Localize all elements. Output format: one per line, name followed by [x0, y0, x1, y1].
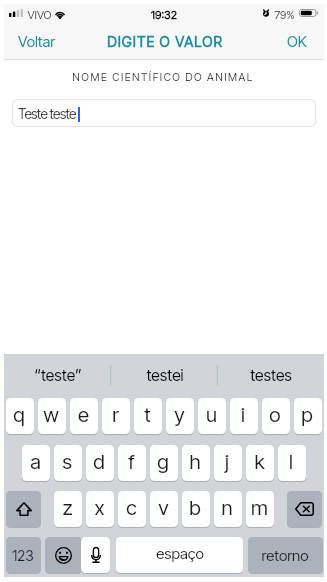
button[interactable]: Dictate: [81, 537, 110, 573]
button[interactable]: retorno: [248, 537, 323, 573]
button[interactable]: “teste”: [4, 354, 111, 396]
button[interactable]: e: [70, 398, 98, 434]
staticText: g: [157, 449, 169, 474]
button[interactable]: a: [22, 445, 50, 481]
staticText: j: [225, 449, 229, 474]
staticText: h: [189, 449, 201, 474]
button[interactable]: Emoji: [45, 537, 82, 573]
staticText: s: [62, 449, 72, 474]
staticText: t: [144, 402, 151, 427]
staticText: b: [189, 495, 201, 520]
button[interactable]: espaço: [116, 537, 243, 573]
staticText: Teste teste: [18, 106, 76, 123]
staticText: d: [93, 449, 105, 474]
staticText: u: [206, 402, 217, 427]
staticText: x: [94, 495, 105, 520]
staticText: f: [128, 449, 135, 474]
staticText: y: [174, 402, 185, 427]
button[interactable]: Teste teste: [12, 99, 316, 127]
staticText: a: [30, 449, 41, 474]
button[interactable]: z: [54, 491, 82, 527]
button[interactable]: i: [230, 398, 258, 434]
button[interactable]: v: [150, 491, 178, 527]
staticText: 79%: [273, 8, 296, 21]
button[interactable]: l: [278, 445, 306, 481]
staticText: n: [221, 495, 233, 520]
button[interactable]: m: [246, 491, 274, 527]
button[interactable]: Backspace: [287, 491, 322, 527]
staticText: o: [269, 402, 281, 427]
staticText: w: [43, 402, 59, 427]
staticText: NOME CIENTÍFICO DO ANIMAL: [3, 71, 323, 84]
button[interactable]: h: [182, 445, 210, 481]
button[interactable]: b: [182, 491, 210, 527]
staticText: q: [13, 402, 25, 427]
button[interactable]: n: [214, 491, 242, 527]
button[interactable]: u: [198, 398, 226, 434]
staticText: Voltar: [18, 32, 56, 50]
button[interactable]: testei: [111, 354, 218, 396]
button[interactable]: p: [294, 398, 322, 434]
staticText: 19:32: [146, 8, 182, 22]
button[interactable]: Shift: [6, 491, 41, 527]
button[interactable]: x: [86, 491, 114, 527]
button[interactable]: j: [214, 445, 242, 481]
button[interactable]: c: [118, 491, 146, 527]
button[interactable]: k: [246, 445, 274, 481]
staticText: i: [241, 402, 245, 427]
button[interactable]: t: [134, 398, 162, 434]
button[interactable]: f: [118, 445, 146, 481]
button[interactable]: g: [150, 445, 178, 481]
staticText: testei: [146, 366, 184, 385]
staticText: OK: [287, 32, 307, 50]
button[interactable]: Voltar: [4, 20, 68, 60]
staticText: espaço: [156, 544, 204, 562]
staticText: k: [254, 449, 265, 474]
staticText: DIGITE O VALOR: [107, 33, 223, 50]
staticText: “teste”: [34, 366, 82, 385]
staticText: VIVO: [25, 8, 54, 22]
staticText: retorno: [261, 546, 309, 564]
staticText: l: [289, 449, 293, 474]
staticText: p: [301, 402, 313, 427]
button[interactable]: OK: [270, 20, 324, 60]
staticText: m: [251, 495, 268, 520]
button[interactable]: o: [262, 398, 290, 434]
button[interactable]: Numbers: [6, 537, 41, 573]
button[interactable]: q: [6, 398, 34, 434]
button[interactable]: w: [38, 398, 66, 434]
staticText: v: [158, 495, 169, 520]
staticText: e: [78, 402, 89, 427]
button[interactable]: r: [102, 398, 130, 434]
button[interactable]: testes: [217, 354, 324, 396]
button[interactable]: d: [86, 445, 114, 481]
staticText: z: [62, 495, 73, 520]
staticText: r: [112, 402, 119, 427]
staticText: 123: [12, 547, 34, 564]
staticText: c: [126, 495, 137, 520]
button[interactable]: s: [54, 445, 82, 481]
staticText: testes: [250, 366, 292, 385]
button[interactable]: y: [166, 398, 194, 434]
